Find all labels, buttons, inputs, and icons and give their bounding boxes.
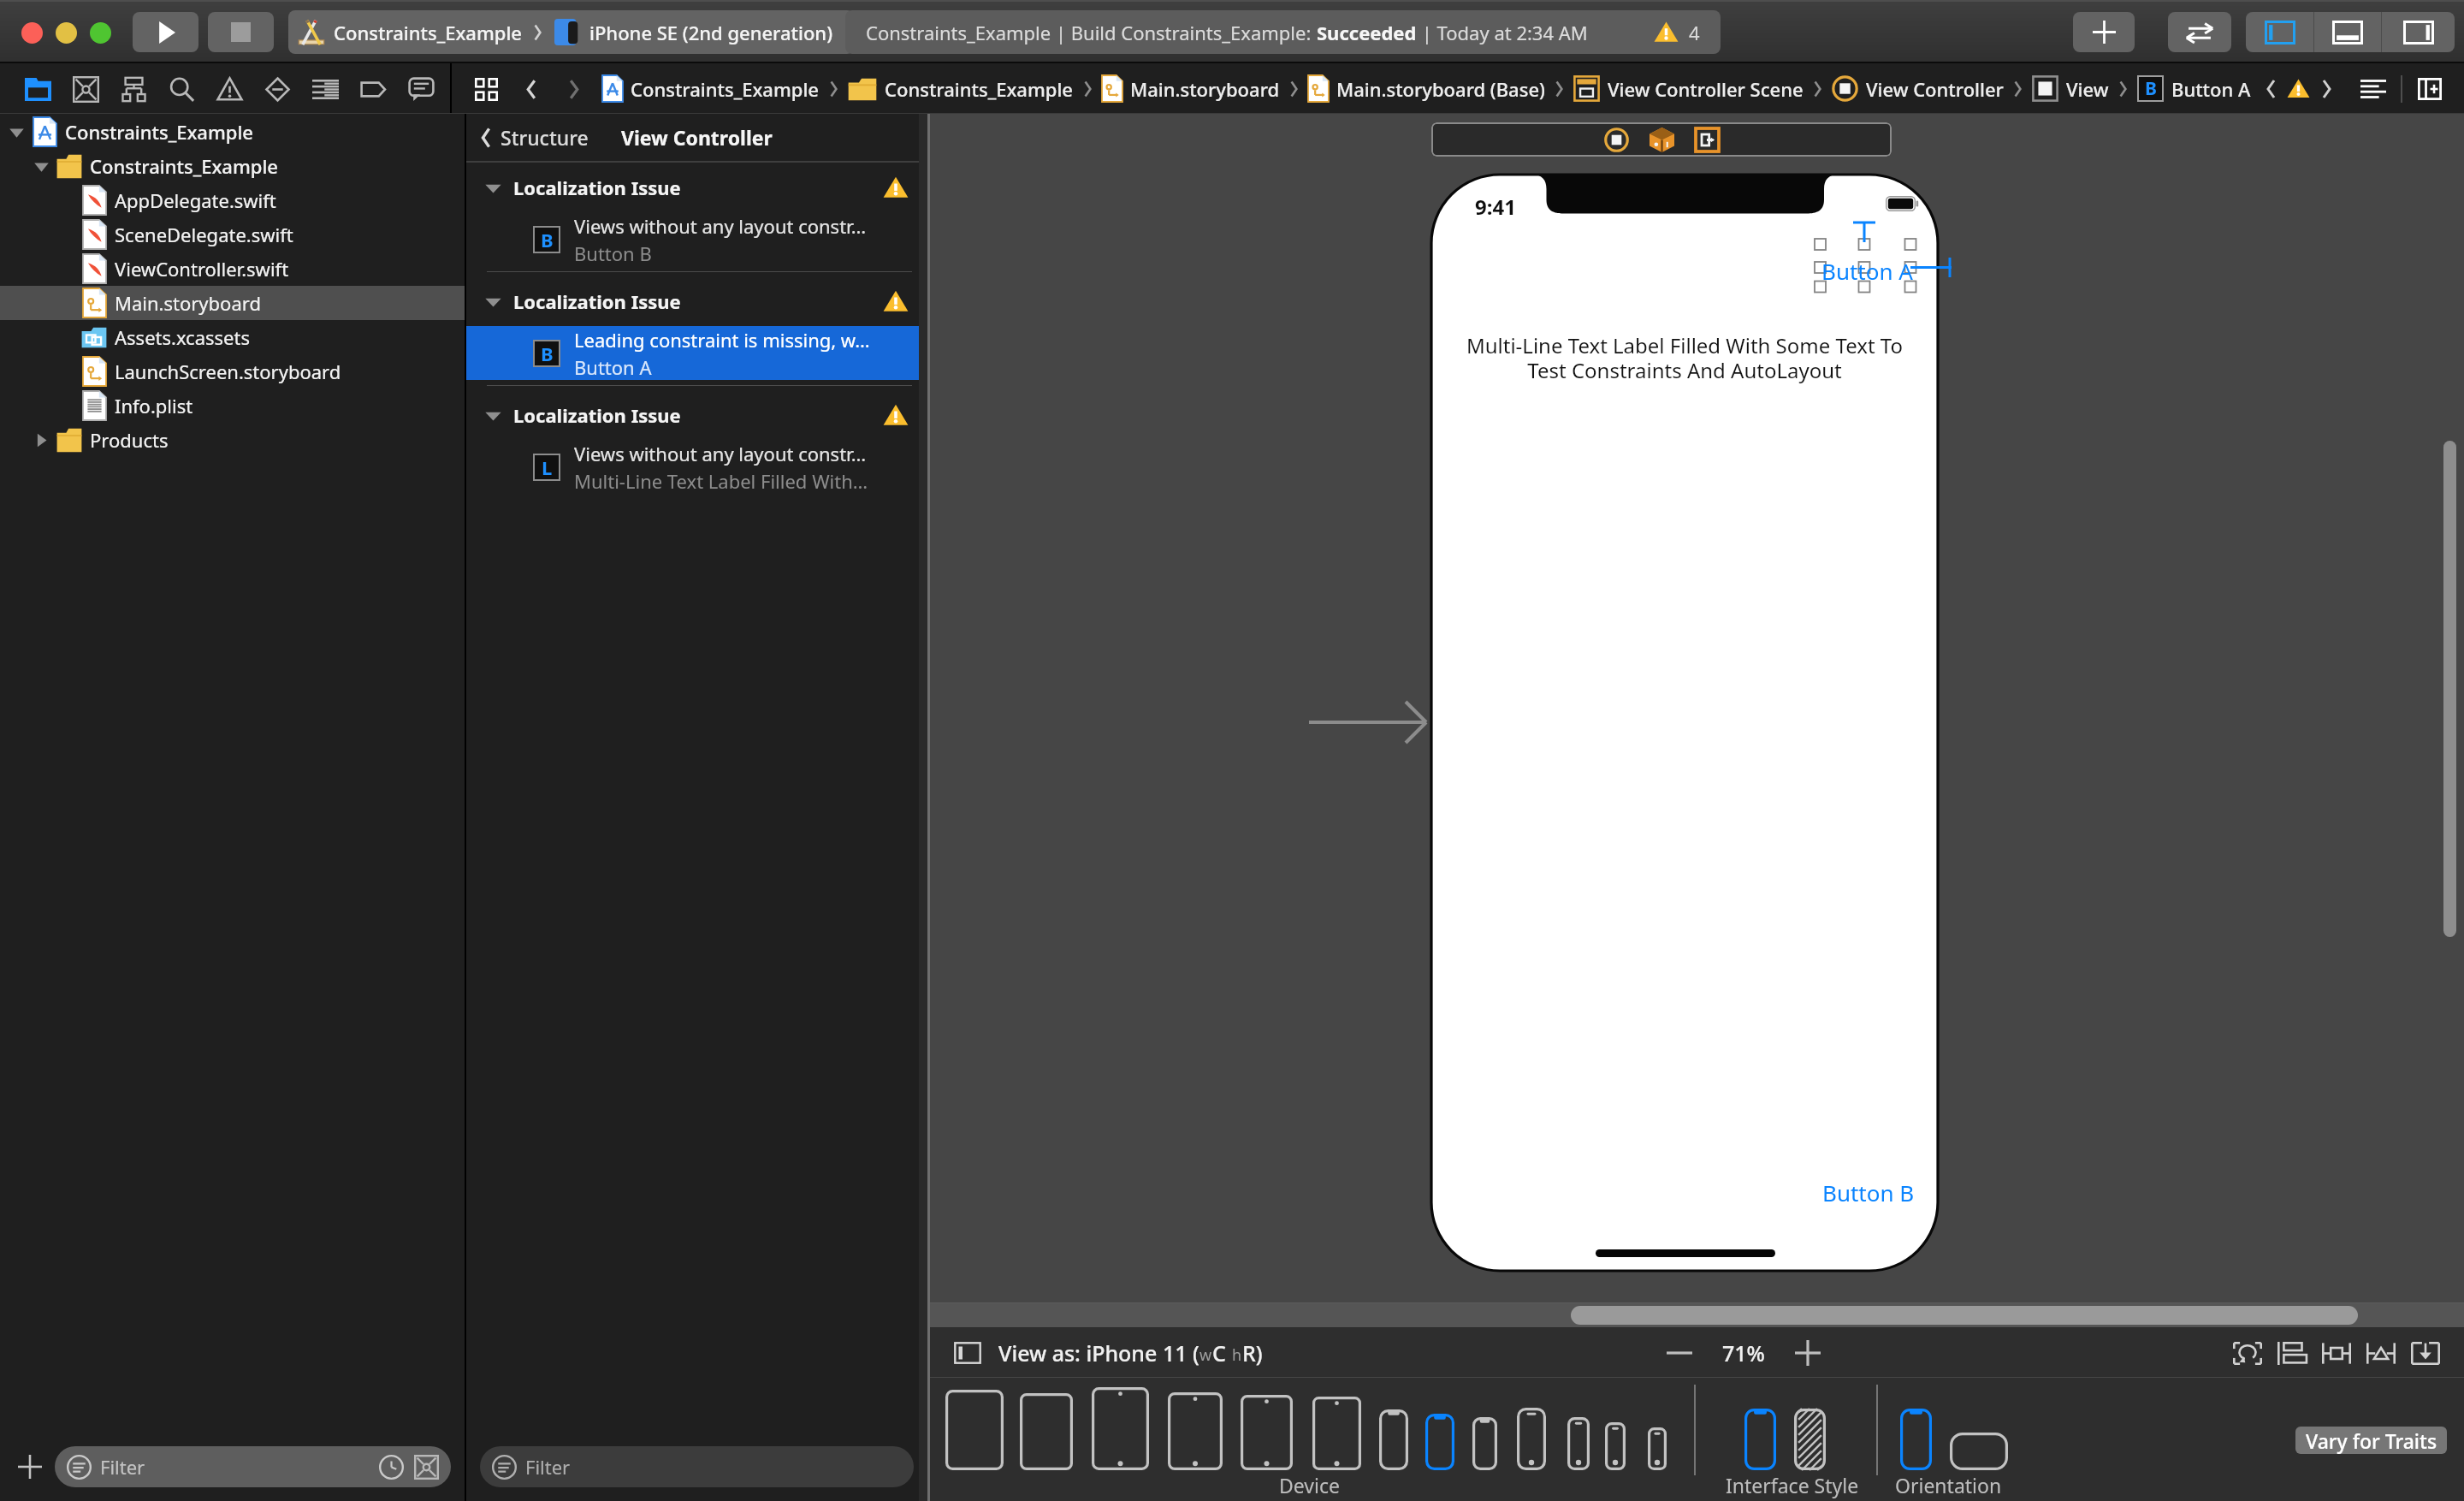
button[interactable]: Constraints_Example | Build Constraints_… [845, 10, 1721, 54]
button[interactable]: L [466, 440, 927, 494]
button[interactable]: Back [515, 73, 548, 105]
button[interactable]: Align [2270, 1329, 2314, 1377]
button[interactable]: Device [945, 1390, 1004, 1470]
staticText: w [1199, 1344, 1212, 1366]
button[interactable]: Symbol navigator [110, 68, 157, 110]
button[interactable]: View Controller [1832, 75, 2004, 102]
button[interactable]: Device [1517, 1408, 1546, 1470]
button[interactable]: Zoom out [1659, 1332, 1700, 1373]
staticText: C [1212, 1338, 1232, 1368]
button[interactable]: Vary for Traits [2295, 1427, 2447, 1454]
button[interactable]: Products [0, 423, 465, 457]
button[interactable]: Source control navigator [62, 68, 110, 110]
button[interactable]: Window button [90, 22, 111, 44]
button[interactable]: Device [1794, 1409, 1826, 1470]
button[interactable]: Button A [1821, 256, 1913, 286]
button[interactable]: Report navigator [397, 68, 445, 110]
button[interactable]: B [466, 212, 927, 266]
button[interactable]: Localization Issue [466, 276, 927, 326]
button[interactable]: Device [1092, 1387, 1149, 1470]
button[interactable]: Button B [1822, 1178, 1915, 1207]
button[interactable]: Toggle Inspector [2382, 12, 2455, 52]
button[interactable]: Find navigator [157, 68, 205, 110]
button[interactable]: Stop [208, 12, 274, 52]
button[interactable]: Device [1379, 1409, 1408, 1470]
button[interactable]: Update frames [2225, 1329, 2270, 1377]
button[interactable]: Editor options [2354, 70, 2392, 108]
staticText: Constraints_Example [65, 119, 254, 145]
button[interactable]: Toggle Debug Area [2314, 12, 2381, 52]
staticText: | Today at 2:34 AM [1417, 20, 1588, 45]
button[interactable]: Structure [466, 114, 927, 161]
button[interactable]: Device [1950, 1433, 2008, 1470]
button[interactable]: Constraints_Example [602, 75, 820, 102]
staticText: Localization Issue [513, 288, 681, 314]
button[interactable]: Zoom in [1787, 1332, 1828, 1373]
button[interactable]: Add new constraints [2314, 1329, 2359, 1377]
button[interactable]: Filter [480, 1446, 914, 1487]
button[interactable]: Device [1425, 1414, 1454, 1470]
button[interactable]: Exit [1690, 123, 1724, 156]
button[interactable]: ViewController.swift [0, 252, 465, 286]
button[interactable]: Previous issue [2254, 73, 2287, 105]
button[interactable]: B [2137, 75, 2251, 102]
button[interactable]: Add file [9, 1445, 51, 1488]
button[interactable]: Toggle Assistant Editor [2168, 12, 2231, 52]
button[interactable]: B [466, 326, 927, 380]
button[interactable]: Embed in [2403, 1329, 2448, 1377]
button[interactable]: Toggle document outline [949, 1334, 986, 1372]
button[interactable]: Window button [21, 22, 43, 44]
button[interactable]: Debug navigator [301, 68, 349, 110]
button[interactable]: Main.storyboard [0, 286, 465, 320]
button[interactable]: Device [1744, 1409, 1776, 1470]
button[interactable]: AppDelegate.swift [0, 183, 465, 217]
button[interactable]: LaunchScreen.storyboard [0, 354, 465, 389]
button[interactable]: Project navigator [14, 68, 62, 110]
staticText: View Controller [1866, 76, 2004, 102]
button[interactable]: Resolve auto layout issues [2359, 1329, 2403, 1377]
button[interactable]: Device [1567, 1417, 1590, 1470]
button[interactable]: Constraints_Example [0, 149, 465, 183]
button[interactable]: View controller [1599, 123, 1633, 156]
button[interactable]: Breakpoint navigator [349, 68, 397, 110]
button[interactable]: Main.storyboard (Base) [1308, 75, 1545, 102]
button[interactable]: Constraints_Example [288, 10, 854, 54]
button[interactable]: Localization Issue [466, 390, 927, 440]
button[interactable]: Device [1472, 1417, 1497, 1470]
button[interactable]: Info.plist [0, 389, 465, 423]
button[interactable]: View Controller Scene [1573, 75, 1804, 102]
button[interactable]: View [2032, 75, 2109, 102]
button[interactable]: Device [1312, 1397, 1361, 1470]
staticText: View as: iPhone 11 ( [998, 1338, 1199, 1368]
button[interactable]: Device [1020, 1393, 1073, 1470]
button[interactable]: SceneDelegate.swift [0, 217, 465, 252]
button[interactable]: Device [1168, 1392, 1223, 1470]
button[interactable]: Window button [56, 22, 77, 44]
button[interactable]: Constraints_Example [848, 76, 1074, 102]
staticText: Assets.xcassets [115, 324, 250, 350]
button[interactable]: Add [2073, 12, 2135, 52]
button[interactable]: Add editor [2411, 70, 2449, 108]
button[interactable]: Next issue [2310, 73, 2343, 105]
button[interactable]: Run [133, 12, 198, 52]
button[interactable]: Forward [558, 73, 590, 105]
staticText: Main.storyboard (Base) [1336, 76, 1545, 102]
button[interactable]: Localization Issue [466, 163, 927, 212]
button[interactable]: Device [1241, 1395, 1293, 1470]
button[interactable]: Toggle Navigator [2246, 12, 2313, 52]
button[interactable]: Device [1648, 1427, 1667, 1470]
staticText: L [542, 454, 553, 480]
staticText: Filter [100, 1454, 145, 1480]
button[interactable]: Constraints_Example [0, 115, 465, 149]
button[interactable]: Assets.xcassets [0, 320, 465, 354]
button[interactable]: First responder [1644, 123, 1679, 156]
button[interactable]: Main.storyboard [1102, 75, 1280, 102]
staticText: R) [1242, 1338, 1263, 1368]
button[interactable]: Filter [55, 1446, 451, 1487]
staticText: Orientation [1895, 1472, 2002, 1498]
button[interactable]: Device [1900, 1409, 1932, 1470]
button[interactable]: Device [1605, 1422, 1626, 1470]
button[interactable]: Issue navigator [205, 68, 253, 110]
button[interactable]: Show related items [469, 72, 503, 106]
button[interactable]: Test navigator [253, 68, 301, 110]
